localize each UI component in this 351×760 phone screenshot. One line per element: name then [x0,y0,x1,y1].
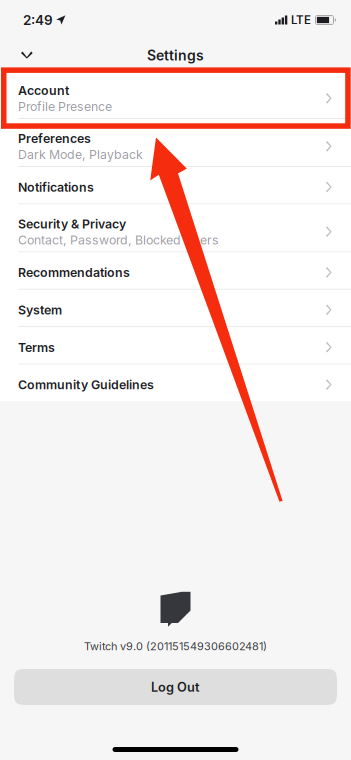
staticText: Security & Privacy [18,216,126,231]
staticText: System [18,302,62,317]
staticText: Recommendations [18,265,130,280]
button[interactable]: Preferences [0,119,351,166]
staticText: Dark Mode, Playback [18,147,143,162]
staticText: Contact, Password, Blocked Users [18,232,219,247]
button[interactable]: Log Out [14,669,337,705]
staticText: 2:49 [23,12,53,28]
staticText: Community Guidelines [18,377,154,392]
staticText: Preferences [18,131,91,146]
button[interactable]: Security & Privacy [0,204,351,251]
button[interactable]: System [0,290,351,326]
staticText: Profile Presence [18,99,112,114]
staticText: Twitch v9.0 (201151549306602481) [84,640,267,653]
button[interactable]: Terms [0,327,351,364]
staticText: Terms [18,340,55,355]
button[interactable]: Account [0,71,351,118]
button[interactable]: Close [12,42,42,68]
staticText: LTE [291,13,311,27]
button[interactable]: Recommendations [0,252,351,289]
button[interactable]: Notifications [0,167,351,203]
staticText: Account [18,83,69,98]
staticText: Settings [147,47,204,64]
staticText: Log Out [151,679,200,695]
staticText: Notifications [18,180,94,195]
button[interactable]: Community Guidelines [0,365,351,401]
